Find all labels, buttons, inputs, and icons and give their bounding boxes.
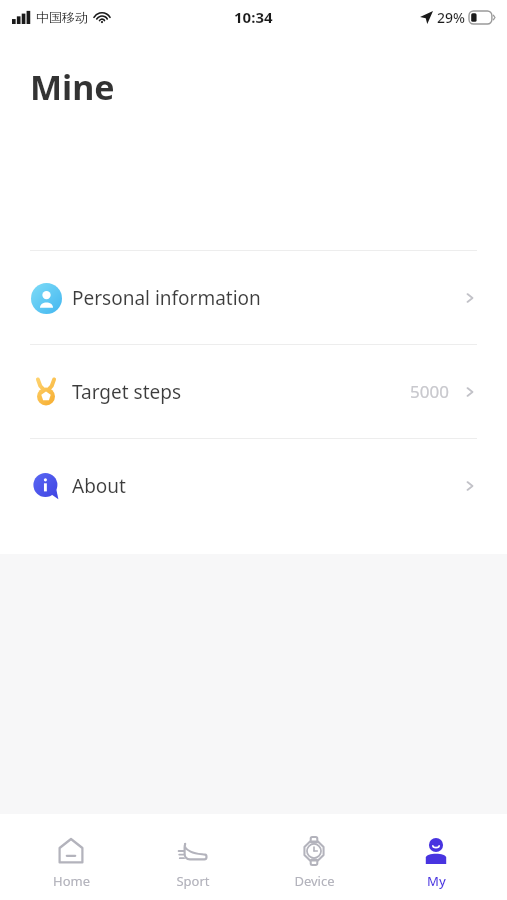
button[interactable]: Personal information [0,251,507,344]
staticText: Sport [176,872,210,890]
button[interactable]: About [0,439,507,532]
other: Home [56,836,86,866]
staticText: 29% [437,8,465,27]
button[interactable]: My [386,814,486,890]
staticText: My [427,872,446,890]
button[interactable]: Target steps [0,345,507,438]
staticText: About [72,473,126,499]
button[interactable]: Sport [143,814,243,890]
staticText: Personal information [72,285,261,311]
staticText: Target steps [72,379,182,405]
staticText: 10:34 [234,7,273,27]
other: My [421,836,451,866]
staticText: Mine [30,64,115,110]
staticText: Home [53,872,90,890]
button[interactable]: Device [264,814,364,890]
other: Device [299,836,329,866]
button[interactable]: Home [21,814,121,890]
staticText: 中国移动 [36,9,88,25]
other: Sport [178,836,208,866]
staticText: 5000 [410,380,449,403]
staticText: Device [294,872,335,890]
